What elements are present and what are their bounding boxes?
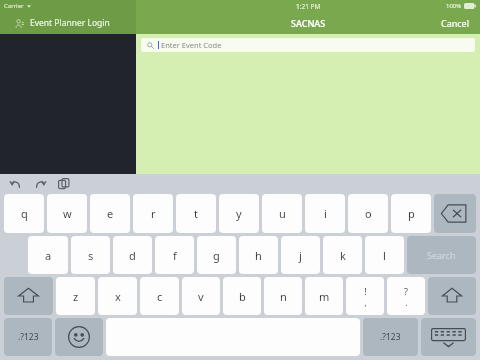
- button[interactable]: s: [71, 236, 110, 274]
- button[interactable]: v: [182, 277, 220, 315]
- staticText: w: [63, 206, 72, 221]
- button[interactable]: Search: [407, 236, 476, 274]
- staticText: r: [151, 206, 156, 221]
- staticText: Event Planner Login: [30, 17, 110, 29]
- button[interactable]: Emoji: [55, 318, 103, 356]
- button[interactable]: g: [197, 236, 236, 274]
- staticText: e: [107, 206, 114, 221]
- staticText: n: [280, 289, 287, 304]
- staticText: .?123: [18, 331, 39, 343]
- staticText: x: [115, 289, 121, 304]
- staticText: Enter Event Code: [161, 40, 222, 50]
- button[interactable]: Shift: [4, 277, 53, 315]
- staticText: b: [239, 289, 246, 304]
- button[interactable]: m: [305, 277, 343, 315]
- staticText: h: [255, 248, 262, 263]
- button[interactable]: e: [90, 194, 130, 233]
- staticText: z: [73, 289, 79, 304]
- staticText: u: [279, 206, 286, 221]
- staticText: j: [299, 248, 302, 263]
- button[interactable]: y: [219, 194, 259, 233]
- button[interactable]: Event Planner Login: [0, 12, 136, 34]
- staticText: Carrier: [4, 2, 24, 10]
- staticText: y: [236, 206, 242, 221]
- button[interactable]: Hide keyboard: [421, 318, 476, 356]
- staticText: Cancel: [441, 17, 470, 29]
- button[interactable]: Cancel: [431, 12, 480, 34]
- button[interactable]: j: [281, 236, 320, 274]
- button[interactable]: n: [264, 277, 302, 315]
- button[interactable]: Enter Event Code: [141, 38, 475, 52]
- staticText: l: [383, 248, 386, 263]
- staticText: ,: [364, 297, 367, 308]
- staticText: SACNAS: [291, 17, 326, 29]
- button[interactable]: b: [223, 277, 261, 315]
- button[interactable]: Shift: [428, 277, 476, 315]
- staticText: a: [45, 248, 52, 263]
- button[interactable]: !: [346, 277, 384, 315]
- button[interactable]: q: [4, 194, 44, 233]
- button[interactable]: p: [391, 194, 431, 233]
- button[interactable]: .?123: [4, 318, 52, 356]
- staticText: Search: [427, 249, 456, 261]
- staticText: q: [21, 206, 28, 221]
- staticText: m: [319, 289, 330, 304]
- staticText: o: [365, 206, 372, 221]
- button[interactable]: f: [155, 236, 194, 274]
- button[interactable]: .?123: [363, 318, 418, 356]
- button[interactable]: Undo: [10, 178, 22, 190]
- staticText: ?: [404, 285, 408, 297]
- staticText: i: [324, 206, 327, 221]
- button[interactable]: a: [28, 236, 68, 274]
- staticText: v: [198, 289, 204, 304]
- staticText: d: [129, 248, 136, 263]
- staticText: k: [340, 248, 346, 263]
- button[interactable]: c: [140, 277, 179, 315]
- staticText: .: [405, 297, 408, 308]
- staticText: f: [173, 248, 177, 263]
- staticText: s: [88, 248, 94, 263]
- staticText: t: [194, 206, 198, 221]
- button[interactable]: Backspace: [434, 194, 476, 233]
- staticText: 100%: [446, 2, 462, 10]
- button[interactable]: o: [348, 194, 388, 233]
- button[interactable]: w: [47, 194, 87, 233]
- button[interactable]: Copy: [58, 178, 70, 190]
- staticText: 1:21 PM: [296, 2, 321, 11]
- button[interactable]: x: [98, 277, 137, 315]
- staticText: !: [364, 285, 367, 297]
- button[interactable]: l: [365, 236, 404, 274]
- button[interactable]: r: [133, 194, 173, 233]
- button[interactable]: d: [113, 236, 152, 274]
- other: Event Planner Login: [14, 18, 25, 29]
- button[interactable]: h: [239, 236, 278, 274]
- button[interactable]: t: [176, 194, 216, 233]
- button[interactable]: u: [262, 194, 302, 233]
- button[interactable]: i: [305, 194, 345, 233]
- staticText: c: [157, 289, 163, 304]
- button[interactable]: Redo: [34, 178, 46, 190]
- staticText: g: [213, 248, 220, 263]
- staticText: p: [408, 206, 415, 221]
- button[interactable]: k: [323, 236, 362, 274]
- staticText: .?123: [380, 331, 401, 343]
- button[interactable]: ?: [387, 277, 425, 315]
- button[interactable]: z: [56, 277, 95, 315]
